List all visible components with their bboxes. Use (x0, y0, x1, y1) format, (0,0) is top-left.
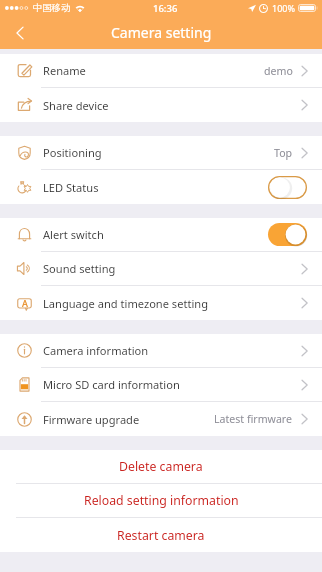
staticText: Micro SD card information (43, 377, 180, 392)
staticText: Language and timezone setting (43, 296, 208, 311)
staticText: Camera setting (111, 23, 212, 42)
staticText: A (22, 297, 28, 309)
button[interactable]: Delete camera (0, 450, 322, 483)
staticText: Rename (43, 63, 86, 78)
staticText: Alert switch (43, 227, 104, 242)
button[interactable]: LED Status (0, 170, 322, 204)
button[interactable]: Camera information (0, 334, 322, 367)
button[interactable]: Sound setting (0, 252, 322, 285)
button[interactable]: Micro SD card information (0, 368, 322, 401)
button[interactable]: Rename (0, 54, 322, 87)
staticText: Share device (43, 98, 109, 113)
staticText: 100% (272, 2, 295, 14)
staticText: Top (274, 146, 293, 160)
button[interactable]: Toggle on (268, 223, 307, 246)
button[interactable]: Toggle off (268, 176, 307, 199)
staticText: Reload setting information (84, 492, 239, 509)
button[interactable]: Positioning (0, 136, 322, 169)
staticText: 中国移动 (33, 2, 71, 14)
staticText: Sound setting (43, 261, 116, 276)
staticText: Camera information (43, 343, 149, 358)
button[interactable]: Restart camera (0, 518, 322, 552)
button[interactable]: Back (0, 16, 40, 49)
staticText: 16:36 (153, 2, 178, 15)
button[interactable]: Share device (0, 88, 322, 122)
staticText: Delete camera (119, 458, 203, 475)
button[interactable]: Firmware upgrade (0, 402, 322, 436)
staticText: Restart camera (117, 527, 205, 544)
staticText: demo (264, 64, 293, 78)
staticText: Firmware upgrade (43, 412, 140, 427)
button[interactable]: A (0, 286, 322, 320)
button[interactable]: Alert switch (0, 218, 322, 251)
staticText: Positioning (43, 145, 102, 160)
button[interactable]: Reload setting information (0, 484, 322, 517)
staticText: LED Status (43, 180, 99, 195)
staticText: Latest firmware (214, 412, 293, 426)
